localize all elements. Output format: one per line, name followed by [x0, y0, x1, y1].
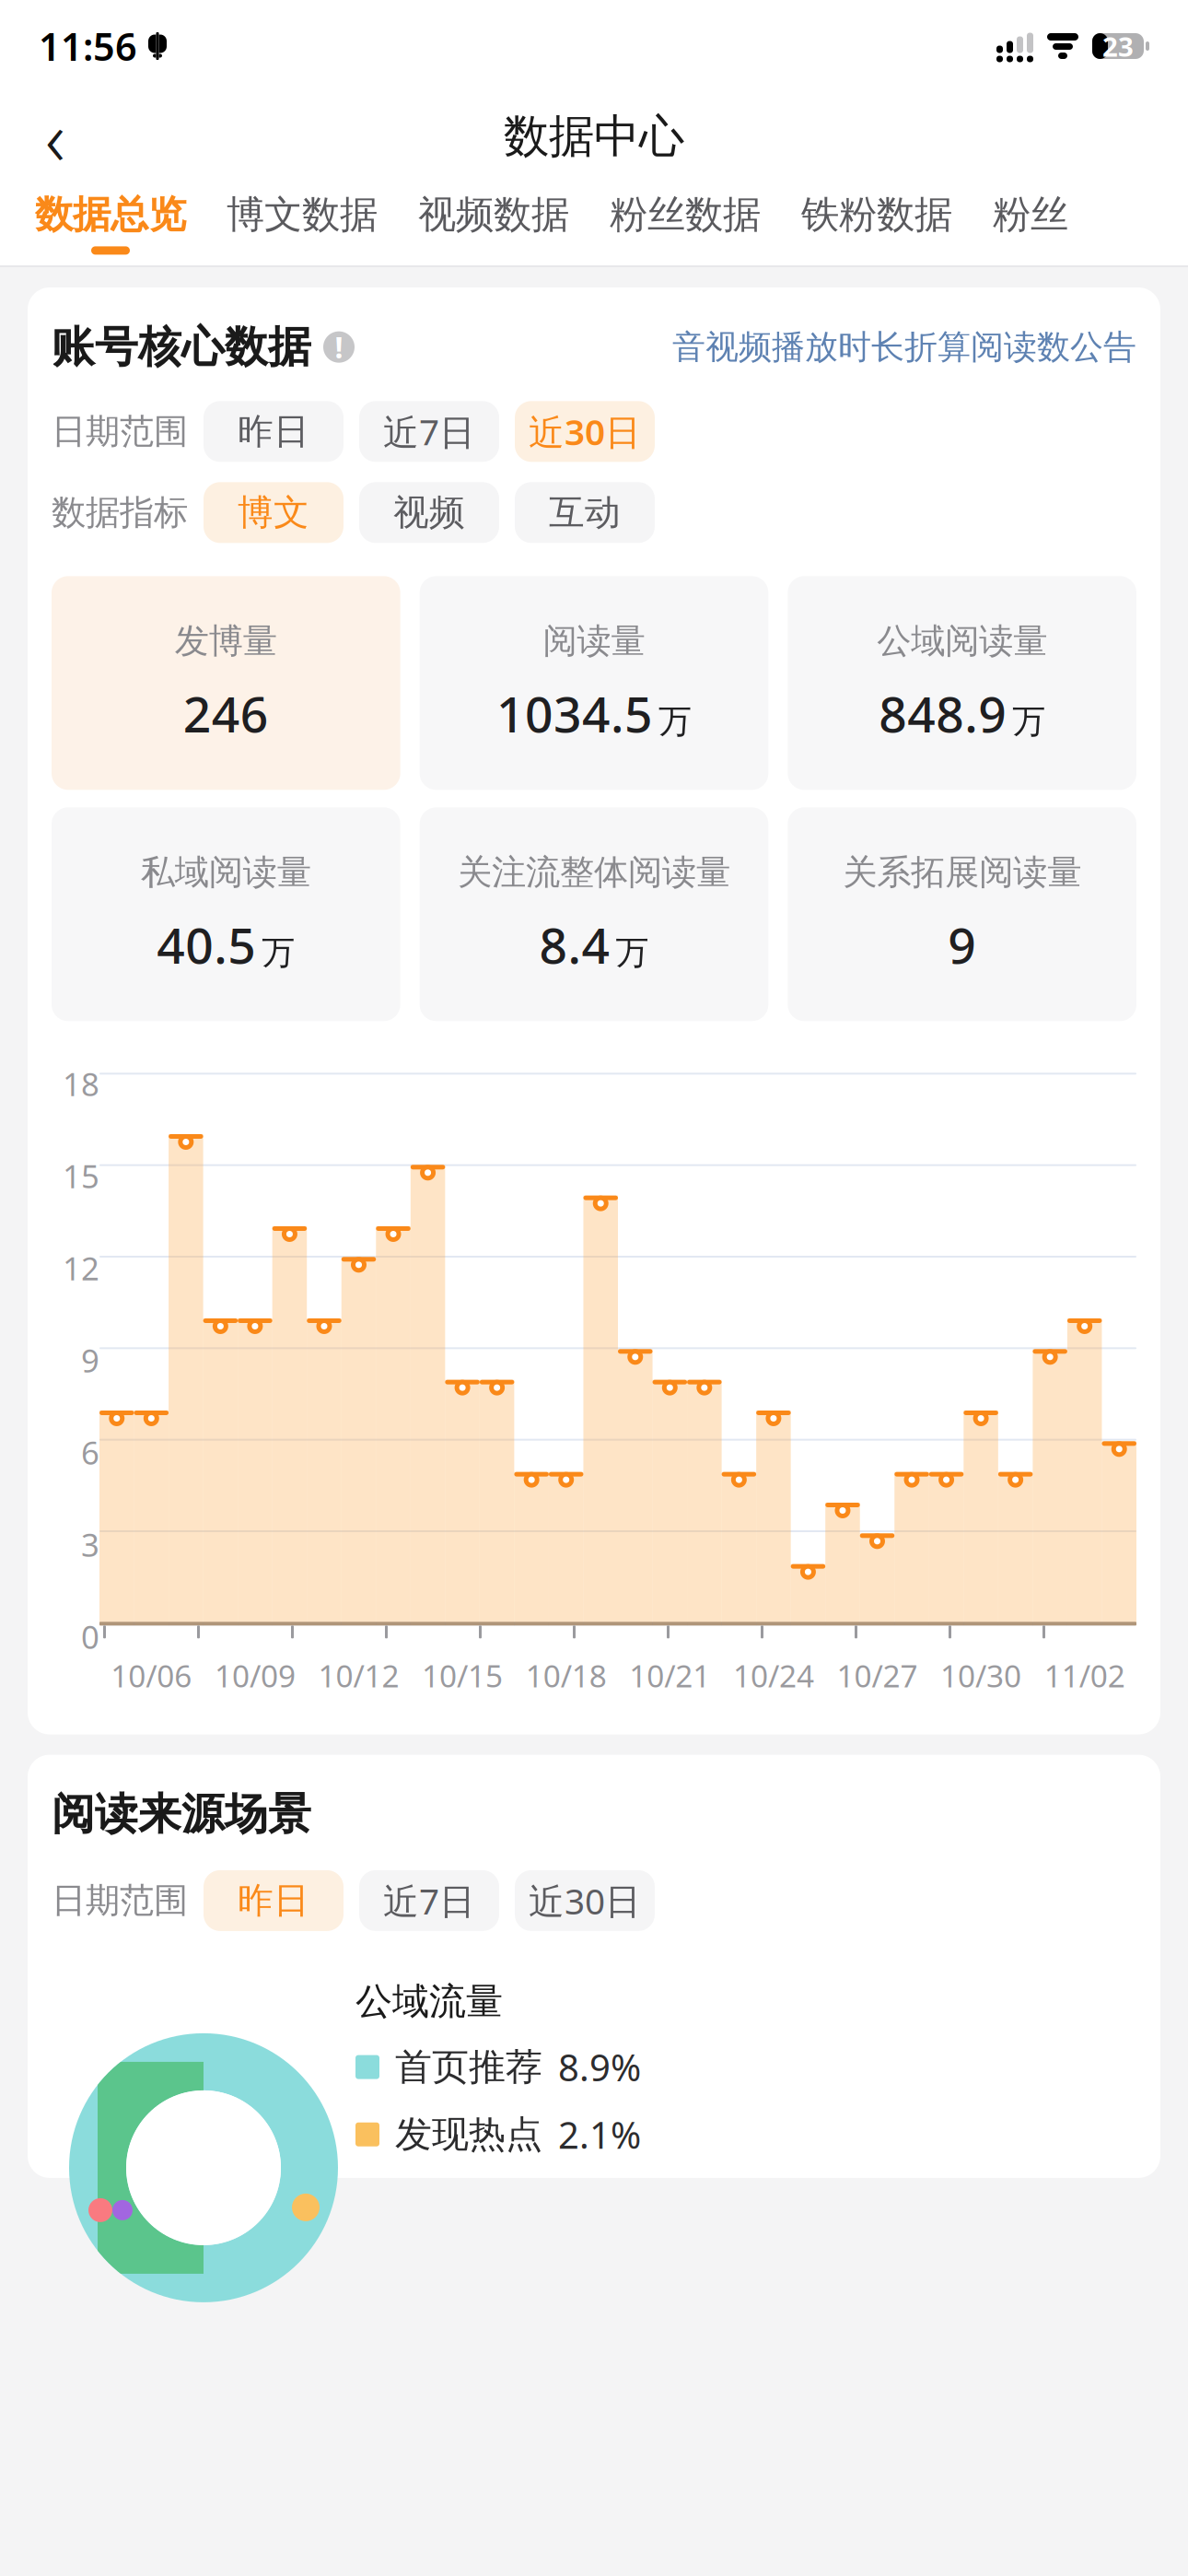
staticText: 1034.5	[496, 681, 653, 746]
staticText: 音视频播放时长折算阅读数公告	[672, 327, 1136, 367]
button[interactable]: 互动	[515, 482, 655, 543]
button[interactable]: Back	[17, 98, 94, 175]
staticText: 10/27	[837, 1655, 918, 1696]
button[interactable]: 昨日	[204, 401, 344, 462]
staticText: 阅读来源场景	[52, 1788, 311, 1841]
staticText: 12	[63, 1247, 99, 1289]
staticText: 视频	[393, 491, 465, 534]
button[interactable]: 视频数据	[398, 181, 589, 265]
staticText: 6	[81, 1431, 99, 1473]
staticText: 互动	[549, 491, 621, 534]
staticText: 关注流整体阅读量	[458, 851, 730, 894]
staticText: 11/02	[1044, 1655, 1125, 1696]
staticText: 8.9%	[558, 2043, 641, 2091]
staticText: 万	[262, 932, 295, 973]
button[interactable]: 昨日	[204, 1870, 344, 1931]
staticText: 近30日	[529, 1877, 641, 1924]
staticText: 发博量	[175, 620, 277, 662]
staticText: 粉丝数据	[610, 191, 761, 238]
button[interactable]: 近30日	[515, 1870, 655, 1931]
staticText: ‹	[45, 86, 65, 187]
staticText: 11:56	[39, 21, 137, 71]
staticText: 粉丝	[993, 191, 1068, 238]
button[interactable]: 音视频播放时长折算阅读数公告	[672, 327, 1136, 367]
staticText: 首页推荐	[395, 2044, 542, 2090]
staticText: 关系拓展阅读量	[843, 851, 1081, 894]
button[interactable]: 视频	[359, 482, 499, 543]
staticText: 近30日	[529, 408, 641, 455]
button[interactable]: 近7日	[359, 401, 499, 462]
staticText: 23	[1102, 28, 1134, 64]
staticText: 10/21	[629, 1655, 710, 1696]
staticText: 10/12	[318, 1655, 399, 1696]
button[interactable]: 近30日	[515, 401, 655, 462]
staticText: 18	[63, 1063, 99, 1105]
staticText: 发现热点	[395, 2112, 542, 2157]
staticText: 10/09	[214, 1655, 296, 1696]
button[interactable]: Info	[323, 327, 355, 367]
staticText: 8.4	[539, 912, 610, 977]
button[interactable]: 粉丝	[973, 181, 1089, 265]
staticText: 万	[1012, 701, 1045, 742]
staticText: 账号核心数据	[52, 321, 311, 373]
staticText: 数据中心	[504, 108, 684, 164]
staticText: 日期范围	[52, 1879, 188, 1922]
staticText: 2.1%	[558, 2110, 641, 2159]
button[interactable]: 粉丝数据	[589, 181, 781, 265]
button[interactable]: 博文	[204, 482, 344, 543]
staticText: 9	[81, 1339, 99, 1381]
staticText: 阅读量	[543, 620, 645, 662]
staticText: 博文	[238, 491, 309, 534]
staticText: 数据总览	[35, 191, 186, 238]
staticText: 10/15	[422, 1655, 503, 1696]
staticText: 40.5	[157, 912, 256, 977]
staticText: 万	[658, 701, 692, 742]
staticText: 9	[948, 912, 976, 977]
staticText: 数据指标	[52, 491, 188, 534]
staticText: !	[335, 327, 343, 367]
staticText: 15	[63, 1155, 99, 1197]
staticText: 10/24	[733, 1655, 814, 1696]
staticText: 10/18	[526, 1655, 607, 1696]
button[interactable]: 博文数据	[206, 181, 398, 265]
button[interactable]: 近7日	[359, 1870, 499, 1931]
staticText: 3	[81, 1523, 99, 1566]
staticText: 铁粉数据	[801, 191, 952, 238]
staticText: 万	[616, 932, 649, 973]
staticText: 日期范围	[52, 410, 188, 453]
staticText: 公域阅读量	[877, 620, 1047, 662]
staticText: 10/06	[111, 1655, 192, 1696]
button[interactable]: 数据总览	[15, 181, 206, 265]
staticText: 昨日	[238, 410, 309, 453]
button[interactable]: 铁粉数据	[781, 181, 973, 265]
staticText: 10/30	[940, 1655, 1021, 1696]
staticText: 博文数据	[227, 191, 378, 238]
staticText: 近7日	[383, 1877, 475, 1924]
staticText: 246	[183, 681, 269, 746]
staticText: 848.9	[879, 681, 1007, 746]
staticText: 近7日	[383, 408, 475, 455]
staticText: 私域阅读量	[141, 851, 311, 894]
staticText: 0	[81, 1615, 99, 1658]
staticText: 公域流量	[355, 1979, 503, 2024]
staticText: 昨日	[238, 1879, 309, 1923]
staticText: 视频数据	[418, 191, 569, 238]
